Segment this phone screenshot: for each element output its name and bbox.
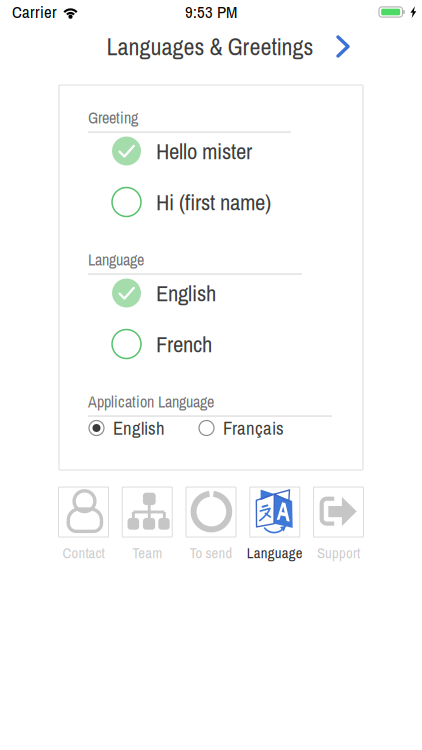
staticText: English <box>113 415 165 440</box>
button[interactable]: Hello mister <box>112 131 352 171</box>
staticText: Application Language <box>88 391 214 413</box>
button[interactable]: Next <box>320 24 366 69</box>
staticText: 9:53 PM <box>185 1 237 23</box>
staticText: To send <box>189 543 232 563</box>
staticText: Contact <box>62 543 104 563</box>
staticText: Greeting <box>88 107 138 129</box>
button[interactable]: French <box>112 324 352 364</box>
button[interactable]: English <box>89 416 165 440</box>
button[interactable]: To send <box>179 487 243 563</box>
staticText: Support <box>317 543 360 563</box>
button[interactable]: Team <box>115 487 179 563</box>
button[interactable]: Français <box>199 416 284 440</box>
staticText: Languages & Greetings <box>106 30 313 63</box>
staticText: Français <box>223 415 284 440</box>
button[interactable]: Support <box>307 487 370 563</box>
button[interactable]: Hi (first name) <box>112 182 352 222</box>
button[interactable]: Language <box>243 487 307 563</box>
staticText: Hello mister <box>156 136 252 166</box>
staticText: French <box>156 329 212 359</box>
staticText: Hi (first name) <box>156 187 271 217</box>
button[interactable]: Contact <box>52 487 115 563</box>
staticText: Language <box>88 249 144 271</box>
button[interactable]: English <box>112 273 352 313</box>
staticText: Language <box>247 543 303 563</box>
staticText: Carrier <box>12 1 57 23</box>
staticText: Team <box>132 543 162 563</box>
staticText: English <box>156 278 216 308</box>
